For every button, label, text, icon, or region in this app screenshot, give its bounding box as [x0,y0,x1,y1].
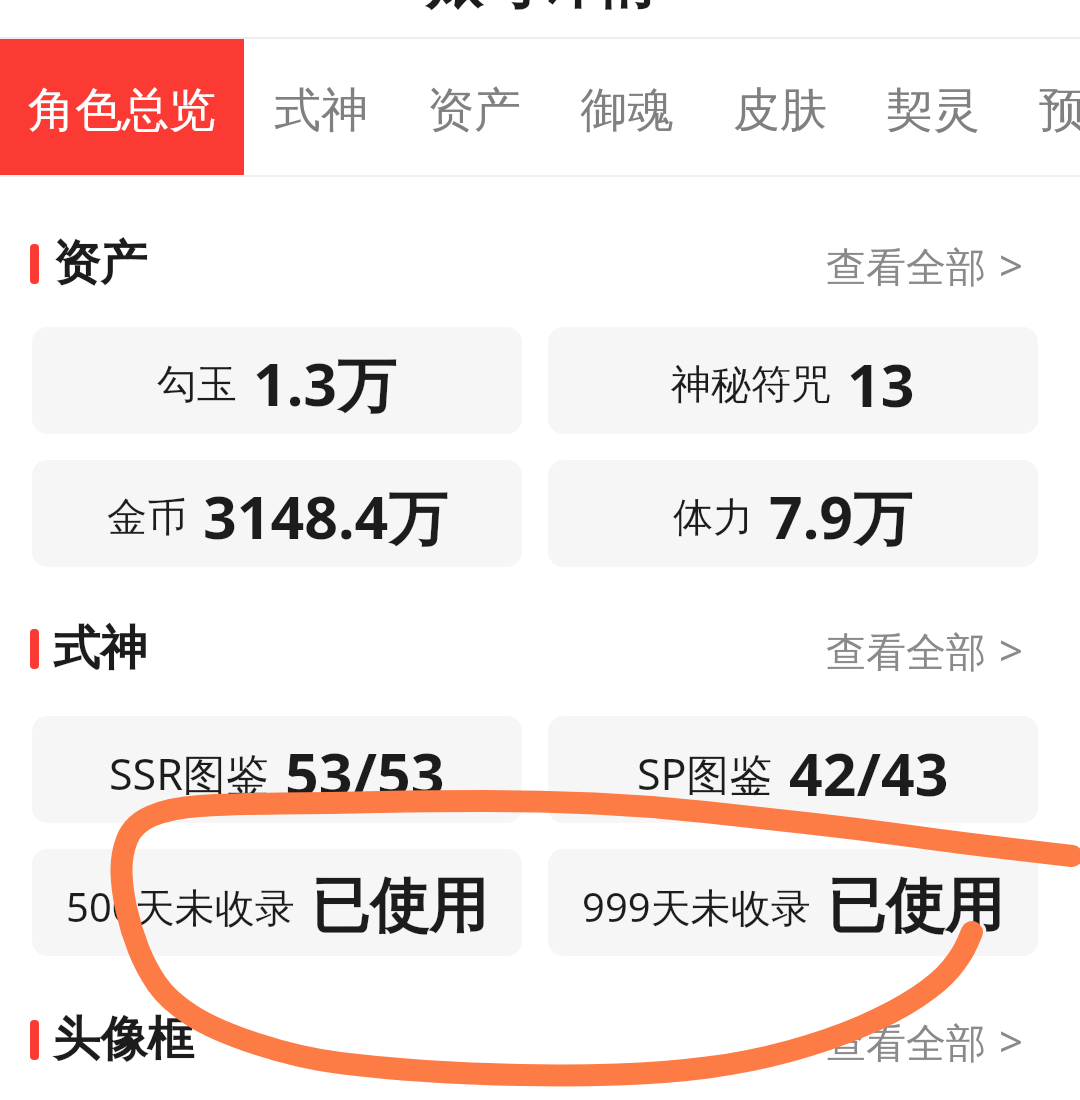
staticText: 神秘符咒 [671,359,831,409]
button[interactable]: 体力 [548,460,1038,567]
staticText: 7.9万 [769,476,913,557]
button[interactable]: 预约 [1010,39,1080,175]
staticText: 1.3万 [253,343,397,424]
staticText: 勾玉 [157,359,237,409]
staticText: 已使用 [311,869,488,943]
button[interactable]: 御魂 [551,39,703,175]
staticText: 头像框 [53,1010,194,1069]
staticText: 查看全部 [826,1018,986,1068]
button[interactable]: 查看全部 [826,235,1024,292]
button[interactable]: 查看全部 [826,620,1024,677]
button[interactable]: 资产 [398,39,550,175]
button[interactable]: SP图鉴 [548,716,1038,823]
staticText: 3148.4万 [203,476,448,557]
button[interactable]: 勾玉 [32,327,522,434]
staticText: 预约 [1039,81,1080,140]
staticText: SSR图鉴 [109,744,269,803]
staticText: 契灵 [886,81,980,140]
button[interactable]: 皮肤 [704,39,856,175]
button[interactable]: 神秘符咒 [548,327,1038,434]
staticText: 角色总览 [28,81,216,140]
staticText: 御魂 [580,81,674,140]
staticText: 500天未收录 [66,879,295,934]
staticText: 金币 [107,492,187,542]
button[interactable]: 金币 [32,460,522,567]
staticText: 式神 [274,81,368,140]
staticText: > [999,621,1024,678]
staticText: 式神 [53,619,147,678]
button[interactable]: 500天未收录 [32,849,522,956]
button[interactable]: 999天未收录 [548,849,1038,956]
staticText: > [999,1012,1024,1069]
staticText: SP图鉴 [637,744,773,803]
staticText: 账号详情 [424,0,656,19]
staticText: 查看全部 [826,627,986,677]
button[interactable]: 式神 [245,39,397,175]
staticText: 皮肤 [733,81,827,140]
staticText: 已使用 [827,869,1004,943]
staticText: > [999,236,1024,293]
staticText: 资产 [427,81,521,140]
staticText: 查看全部 [826,242,986,292]
staticText: 53/53 [285,733,445,813]
button[interactable]: 角色总览 [0,39,244,175]
button[interactable]: 查看全部 [826,1011,1024,1068]
staticText: 资产 [53,234,147,293]
button[interactable]: SSR图鉴 [32,716,522,823]
staticText: 体力 [673,492,753,542]
staticText: 999天未收录 [582,879,811,934]
staticText: 13 [847,344,915,424]
staticText: 42/43 [789,733,949,813]
button[interactable]: 契灵 [857,39,1009,175]
